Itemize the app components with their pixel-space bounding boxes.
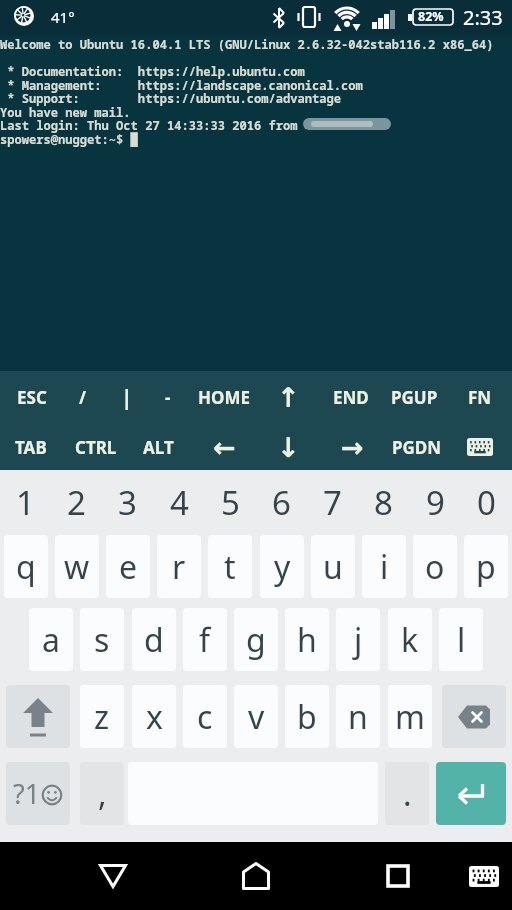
staticText: ↓ [277,432,300,463]
staticText: ALT [143,436,174,459]
button[interactable]: q [4,535,48,598]
button[interactable]: k [388,608,432,671]
button[interactable]: u [311,535,355,598]
staticText: w [64,545,90,589]
staticText: q [16,545,36,589]
button[interactable]: p [464,535,508,598]
button[interactable]: w [55,535,99,598]
button[interactable]: CTRL [66,429,126,465]
button[interactable]: 0 [461,476,512,528]
button[interactable]: a [29,608,73,671]
staticText: p [476,545,496,589]
button[interactable]: , [80,762,124,825]
button[interactable]: r [157,535,201,598]
button[interactable]: Welcome to Ubuntu 16.04.1 LTS (GNU/Linux… [0,36,512,371]
button[interactable]: HOME [194,379,254,415]
button[interactable]: n [336,685,380,748]
staticText: / [79,386,87,409]
staticText: u [323,545,343,589]
staticText: 0 [477,480,496,525]
button[interactable] [462,854,506,898]
button[interactable]: l [439,608,483,671]
staticText: * Support: https://ubuntu.com/advantage [0,90,342,106]
button[interactable]: o [413,535,457,598]
button[interactable]: END [321,379,381,415]
button[interactable]: → [322,429,382,465]
button[interactable]: x [132,685,176,748]
staticText: k [401,618,419,662]
staticText: v [248,695,265,739]
staticText: a [42,618,60,662]
button[interactable] [6,685,70,748]
button[interactable] [85,848,141,904]
staticText: 7 [323,480,342,525]
button[interactable]: d [132,608,176,671]
button[interactable]: ↓ [258,429,318,465]
staticText: 2:33 [463,4,503,31]
button[interactable]: TAB [1,429,61,465]
staticText: i [380,545,389,589]
staticText: h [297,618,317,662]
button[interactable]: ?1 [6,762,70,825]
button[interactable] [370,848,426,904]
button[interactable]: | [97,379,157,415]
staticText: END [333,386,369,409]
staticText: z [94,695,110,739]
staticText: 2 [67,480,86,525]
staticText: s [94,618,110,662]
button[interactable] [436,762,506,825]
button[interactable]: ALT [128,429,188,465]
staticText: g [246,618,266,662]
button[interactable]: 8 [358,476,409,528]
button[interactable]: 9 [410,476,461,528]
button[interactable]: . [385,762,429,825]
button[interactable]: - [138,379,198,415]
staticText: ?1 [13,775,41,812]
staticText: * Management: https://landscape.canonica… [0,77,363,93]
button[interactable]: 1 [0,476,51,528]
staticText: c [197,695,213,739]
button[interactable]: e [106,535,150,598]
staticText: . [403,772,412,816]
button[interactable]: 4 [154,476,205,528]
button[interactable]: ↑ [258,379,318,415]
button[interactable]: c [183,685,227,748]
staticText: FN [468,386,492,409]
button[interactable]: PGUP [384,379,444,415]
staticText: 9 [426,480,445,525]
button[interactable]: s [80,608,124,671]
button[interactable] [460,429,500,465]
staticText: CTRL [75,436,117,459]
staticText: f [199,618,211,662]
button[interactable]: y [260,535,304,598]
button[interactable]: j [336,608,380,671]
button[interactable]: z [80,685,124,748]
button[interactable]: t [208,535,252,598]
button[interactable]: 7 [307,476,358,528]
button[interactable]: ← [194,429,254,465]
button[interactable]: / [53,379,113,415]
button[interactable]: v [234,685,278,748]
button[interactable]: ESC [2,379,62,415]
button[interactable] [228,848,284,904]
button[interactable]: 2 [51,476,102,528]
button[interactable]: m [388,685,432,748]
staticText: e [119,545,138,589]
button[interactable]: f [183,608,227,671]
button[interactable]: PGDN [387,429,447,465]
button[interactable]: 3 [102,476,153,528]
staticText: r [172,545,186,589]
button[interactable]: g [234,608,278,671]
button[interactable]: 5 [205,476,256,528]
staticText: → [341,432,364,463]
button[interactable]: h [285,608,329,671]
button[interactable]: FN [450,379,510,415]
button[interactable] [442,685,506,748]
button[interactable]: i [362,535,406,598]
staticText: ← [213,432,236,463]
button[interactable]: b [285,685,329,748]
button[interactable]: 6 [256,476,307,528]
staticText: 82% [418,8,444,25]
staticText: 5 [221,480,240,525]
